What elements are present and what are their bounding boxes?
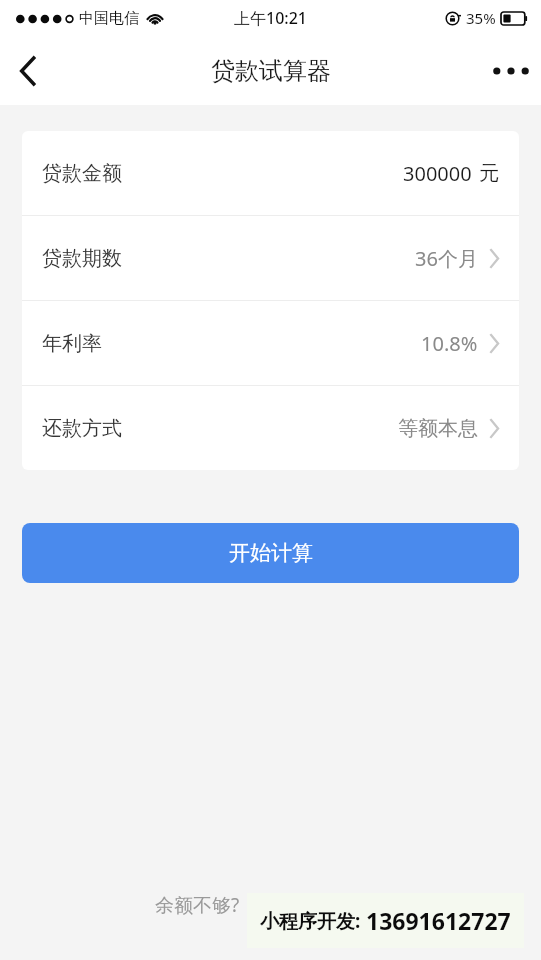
button[interactable]: 贷款期数 bbox=[22, 216, 519, 300]
button[interactable]: Back bbox=[0, 43, 56, 99]
staticText: 上午10:21 bbox=[234, 7, 307, 29]
button[interactable]: 贷款金额 bbox=[22, 131, 519, 215]
staticText: 300000 bbox=[403, 160, 472, 187]
staticText: 36个月 bbox=[415, 245, 478, 272]
staticText: 贷款试算器 bbox=[211, 56, 331, 86]
staticText: 35% bbox=[466, 8, 496, 28]
button[interactable]: 年利率 bbox=[22, 301, 519, 385]
button[interactable]: 开始计算 bbox=[22, 523, 519, 583]
staticText: 13691612727 bbox=[366, 905, 511, 936]
button[interactable]: 还款方式 bbox=[22, 386, 519, 470]
staticText: 贷款期数 bbox=[42, 246, 122, 271]
staticText: 贷款金额 bbox=[42, 161, 122, 186]
staticText: 等额本息 bbox=[398, 416, 478, 441]
staticText: 还款方式 bbox=[42, 416, 122, 441]
staticText: 年利率 bbox=[42, 331, 102, 356]
staticText: 中国电信 bbox=[79, 9, 139, 28]
staticText: 元 bbox=[479, 161, 499, 186]
button[interactable]: More options bbox=[481, 41, 541, 101]
staticText: 小程序开发: bbox=[260, 908, 366, 934]
staticText: 余额不够? bbox=[155, 892, 240, 918]
button[interactable]: 小程序开发: bbox=[247, 893, 524, 948]
staticText: 开始计算 bbox=[229, 540, 313, 566]
staticText: 10.8% bbox=[421, 330, 478, 357]
